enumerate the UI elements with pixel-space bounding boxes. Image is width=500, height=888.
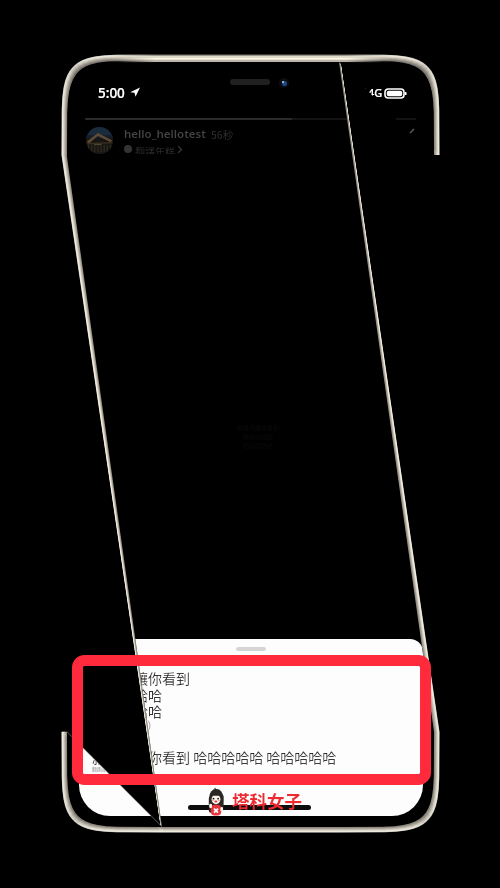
staticText: 塔科女子 (232, 788, 302, 813)
staticText: 翻譯自繁體中文 (92, 766, 124, 773)
staticText: 翻譯年糕 (135, 144, 175, 154)
button[interactable]: Close (392, 124, 418, 150)
staticText: 就是不讓你看到 哈哈哈哈哈 哈哈哈哈哈 (92, 747, 337, 767)
staticText: hello_hellotest (124, 126, 206, 142)
staticText: 4G (368, 85, 383, 100)
staticText: 5:00 (98, 84, 125, 102)
staticText: 原文（中文） (92, 717, 158, 733)
staticText: 56秒 (211, 127, 234, 142)
button[interactable]: hello_hellotest (86, 126, 234, 154)
staticText: 哈哈哈哈哈 (92, 701, 162, 721)
staticText: 哈哈哈哈哈 (92, 685, 162, 705)
staticText: 就是不讓你看到 (92, 668, 190, 688)
